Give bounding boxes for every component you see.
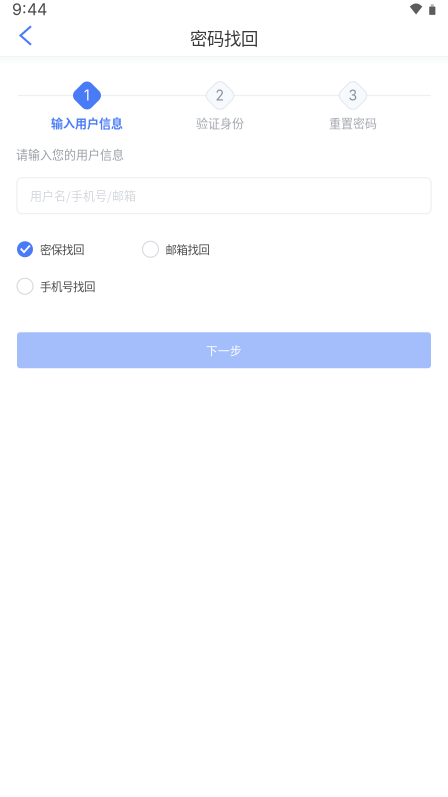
- staticText: 密保找回: [40, 241, 84, 258]
- staticText: 用户名/手机号/邮箱: [30, 187, 136, 204]
- staticText: 1: [84, 87, 90, 104]
- button[interactable]: 下一步: [17, 332, 431, 368]
- staticText: 3: [348, 87, 357, 104]
- staticText: 重置密码: [329, 114, 377, 132]
- staticText: 验证身份: [196, 114, 244, 132]
- staticText: 邮箱找回: [165, 241, 209, 258]
- button[interactable]: 手机号找回: [17, 272, 142, 300]
- staticText: 请输入您的用户信息: [16, 146, 124, 163]
- staticText: 2: [215, 87, 224, 104]
- staticText: 下一步: [206, 342, 242, 359]
- staticText: 输入用户信息: [51, 114, 123, 132]
- staticText: 密码找回: [190, 25, 258, 50]
- button[interactable]: Back: [0, 19, 47, 56]
- staticText: 9:44: [12, 0, 47, 19]
- button[interactable]: 邮箱找回: [142, 235, 268, 263]
- button[interactable]: 密保找回: [17, 235, 142, 263]
- staticText: 手机号找回: [40, 278, 95, 295]
